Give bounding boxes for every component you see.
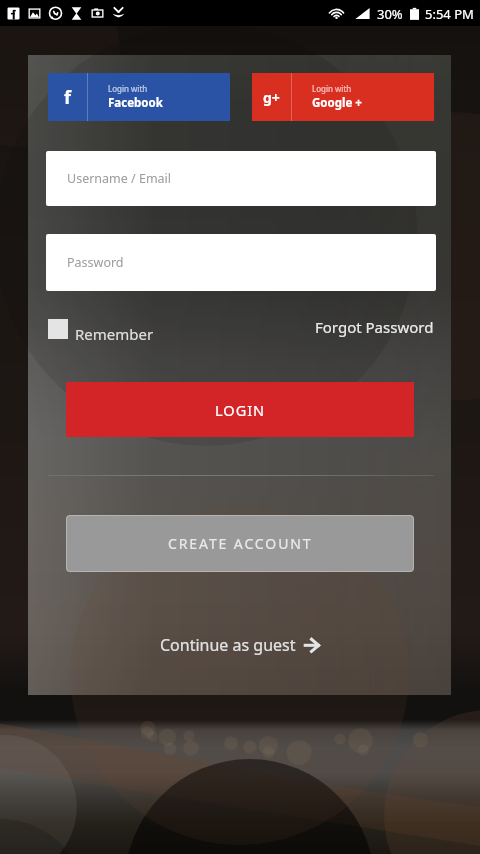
staticText: Facebook [108, 95, 163, 111]
staticText: CREATE ACCOUNT [168, 534, 313, 553]
button[interactable]: g+ [252, 73, 434, 121]
staticText: Username / Email [67, 170, 172, 187]
button[interactable]: CREATE ACCOUNT [66, 515, 414, 572]
staticText: Continue as guest [160, 634, 296, 656]
staticText: Login with [108, 83, 148, 94]
staticText: Password [67, 254, 124, 271]
staticText: 5:54 PM [425, 5, 474, 23]
button[interactable]: Forgot Password [315, 317, 434, 337]
staticText: Login with [312, 83, 352, 94]
button[interactable]: Remember [48, 324, 154, 344]
staticText: Google + [312, 95, 362, 111]
staticText: Remember [75, 324, 154, 344]
staticText: 30% [377, 5, 403, 23]
button[interactable]: Continue as guest [28, 630, 451, 660]
button[interactable]: LOGIN [66, 382, 414, 437]
button[interactable]: f [48, 73, 230, 121]
staticText: g+ [263, 88, 280, 107]
button[interactable]: Username / Email [46, 151, 436, 206]
button[interactable]: Password [46, 234, 436, 291]
staticText: LOGIN [215, 400, 266, 420]
staticText: f [64, 85, 71, 110]
